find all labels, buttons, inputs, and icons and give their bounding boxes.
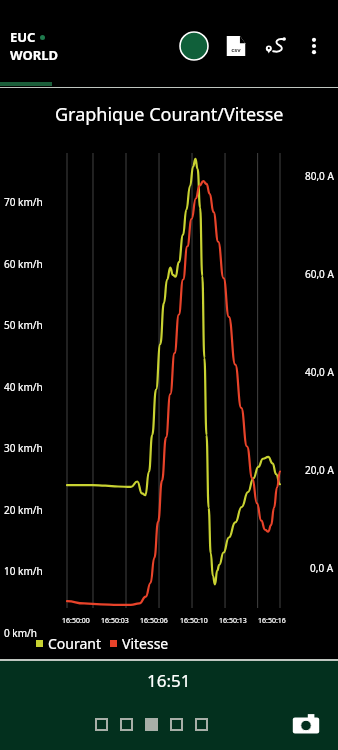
staticText: 60 km/h [4,257,43,271]
staticText: Graphique Courant/Vitesse [55,102,284,127]
button[interactable]: Route [256,26,296,66]
staticText: EUC [10,28,36,46]
staticText: Vitesse [122,634,169,653]
staticText: 16:50:13 [219,616,247,626]
staticText: 10 km/h [4,564,43,578]
button[interactable]: More options [296,28,332,64]
button[interactable]: Page 4 [170,718,183,731]
button[interactable]: Page 5 [195,718,208,731]
staticText: 70 km/h [4,195,43,209]
staticText: 0,0 A [310,561,334,575]
button[interactable]: Camera [284,702,328,746]
button[interactable]: Record [172,24,216,68]
staticText: 40,0 A [305,365,334,379]
staticText: 0 km/h [4,626,37,640]
staticText: 16:50:03 [101,616,129,626]
staticText: Courant [48,634,102,653]
staticText: 20 km/h [4,503,43,517]
staticText: -20,0 A [301,659,334,673]
staticText: 16:50:06 [140,616,168,626]
button[interactable]: Page 2 [120,718,133,731]
staticText: 16:51 [147,669,191,692]
button[interactable]: Page 1 [95,718,108,731]
staticText: 16:50:00 [62,616,90,626]
staticText: 50 km/h [4,318,43,332]
staticText: 40 km/h [4,380,43,394]
staticText: csv [231,46,241,54]
staticText: 20,0 A [305,463,334,477]
staticText: WORLD [10,46,59,64]
staticText: 60,0 A [305,267,334,281]
button[interactable]: Export CSV [216,26,256,66]
staticText: 30 km/h [4,441,43,455]
staticText: 16:50:16 [258,616,286,626]
staticText: 16:50:10 [180,616,208,626]
staticText: 80,0 A [305,169,334,183]
